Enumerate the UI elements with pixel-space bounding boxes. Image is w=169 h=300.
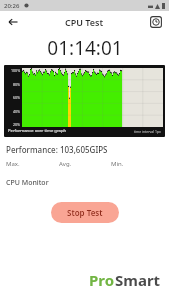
staticText: Min. <box>111 160 163 168</box>
staticText: CPU Monitor <box>6 178 49 188</box>
staticText: 40% <box>13 109 21 114</box>
staticText: Smart <box>115 270 161 290</box>
staticText: Performance over time graph <box>8 128 67 134</box>
staticText: 100% <box>11 68 21 73</box>
staticText: CPU Test <box>65 16 104 28</box>
staticText: Avg. <box>59 160 111 168</box>
staticText: 20:26 <box>4 2 20 10</box>
staticText: 20% <box>13 122 21 127</box>
staticText: Max. <box>6 160 59 168</box>
staticText: Pro <box>89 270 115 290</box>
staticText: 60% <box>13 95 21 100</box>
button[interactable]: Stop Test <box>51 202 119 223</box>
staticText: Stop Test <box>67 207 103 218</box>
staticText: 01:14:01 <box>47 35 123 61</box>
staticText: Performance: 103,605GIPS <box>6 144 108 155</box>
button[interactable]: Back <box>4 13 22 31</box>
staticText: 80% <box>13 82 21 87</box>
staticText: time interval 1px <box>134 129 161 134</box>
button[interactable]: Timer settings <box>148 14 164 30</box>
